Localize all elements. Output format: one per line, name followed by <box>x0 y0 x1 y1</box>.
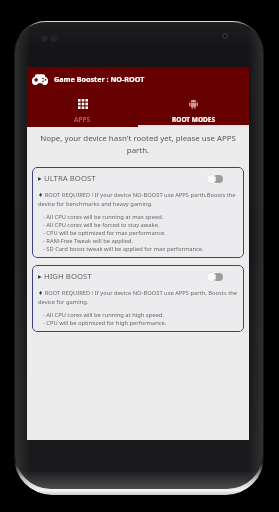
staticText: - RAM-Free Tweak will be applied. <box>43 237 134 245</box>
other: Game controller <box>32 73 48 86</box>
staticText: ▸ ULTRA BOOST <box>38 173 96 184</box>
button[interactable]: Toggle <box>206 174 239 184</box>
staticText: ROOT MODES <box>172 115 216 124</box>
button[interactable]: ▸ HIGH BOOST <box>32 265 244 332</box>
staticText: - CPU will be optimized for max performa… <box>43 229 166 237</box>
staticText: - All CPU cores will be forced to stay a… <box>43 221 160 229</box>
button[interactable]: ROOT MODES <box>138 91 249 127</box>
staticText: ♦ ROOT REQUIRED ! If your device NO-BOOS… <box>38 289 239 306</box>
staticText: Nope, your device hasn't rooted yet, ple… <box>34 133 242 155</box>
staticText: APPS <box>74 115 91 124</box>
staticText: ♦ ROOT REQUIRED ! If your device NO-BOOS… <box>38 191 239 208</box>
button[interactable]: Toggle <box>206 272 239 282</box>
button[interactable]: APPS <box>27 91 138 127</box>
staticText: - All CPU cores will be running at high … <box>43 311 164 319</box>
staticText: - SD Card boost tweak will be applied fo… <box>43 245 204 253</box>
button[interactable]: ▸ ULTRA BOOST <box>32 167 244 258</box>
staticText: ▸ HIGH BOOST <box>38 271 92 282</box>
staticText: - All CPU cores will be running at max s… <box>43 213 164 221</box>
staticText: - CPU will be optimized for high perform… <box>43 319 167 327</box>
staticText: Game Booster : NO-ROOT <box>54 74 145 84</box>
